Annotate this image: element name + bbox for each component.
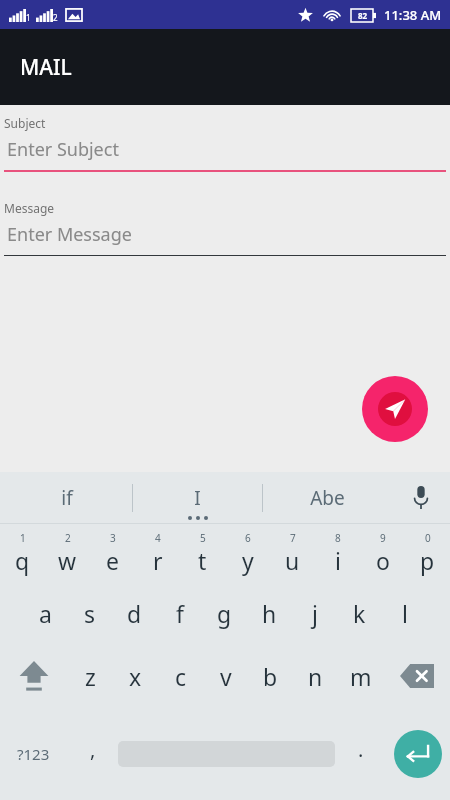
button[interactable]: , xyxy=(67,708,118,800)
button[interactable]: j xyxy=(292,582,337,644)
staticText: Enter Message xyxy=(7,222,132,247)
staticText: d xyxy=(127,598,142,629)
staticText: 0 xyxy=(425,531,431,545)
button[interactable]: 5 xyxy=(180,524,225,582)
staticText: g xyxy=(217,598,232,629)
staticText: 6 xyxy=(245,531,251,545)
staticText: s xyxy=(84,598,96,629)
staticText: c xyxy=(175,661,187,692)
button[interactable]: 2 xyxy=(45,524,90,582)
button[interactable]: n xyxy=(293,644,338,708)
button[interactable]: Shift xyxy=(0,644,67,708)
staticText: m xyxy=(350,661,372,692)
button[interactable]: 4 xyxy=(135,524,180,582)
staticText: , xyxy=(90,736,96,763)
staticText: v xyxy=(220,661,232,692)
button[interactable]: . xyxy=(335,708,386,800)
staticText: y xyxy=(242,545,254,576)
staticText: o xyxy=(376,545,390,576)
staticText: . xyxy=(358,736,364,763)
staticText: 4 xyxy=(155,531,161,545)
button[interactable]: f xyxy=(157,582,202,644)
button[interactable]: Message xyxy=(0,200,450,256)
button[interactable]: b xyxy=(248,644,293,708)
staticText: I xyxy=(194,485,201,511)
button[interactable]: c xyxy=(158,644,203,708)
staticText: Subject xyxy=(4,115,46,131)
staticText: p xyxy=(420,545,435,576)
button[interactable]: 0 xyxy=(405,524,450,582)
button[interactable]: 8 xyxy=(315,524,360,582)
button[interactable]: v xyxy=(203,644,248,708)
staticText: n xyxy=(308,661,323,692)
button[interactable]: Abe xyxy=(263,472,392,523)
staticText: 7 xyxy=(290,531,296,545)
staticText: l xyxy=(402,598,408,629)
staticText: w xyxy=(58,545,77,576)
button[interactable]: 3 xyxy=(90,524,135,582)
staticText: h xyxy=(262,598,277,629)
staticText: 9 xyxy=(380,531,386,545)
staticText: 5 xyxy=(200,531,206,545)
button[interactable]: 1 xyxy=(0,524,45,582)
staticText: 3 xyxy=(110,531,116,545)
staticText: b xyxy=(263,661,278,692)
button[interactable]: g xyxy=(202,582,247,644)
staticText: Message xyxy=(4,200,55,216)
button[interactable]: a xyxy=(23,582,67,644)
button[interactable]: 9 xyxy=(360,524,405,582)
button[interactable]: z xyxy=(67,644,113,708)
button[interactable]: x xyxy=(113,644,158,708)
staticText: a xyxy=(39,598,52,629)
staticText: 1 xyxy=(26,12,31,23)
button[interactable]: ?123 xyxy=(0,708,67,800)
staticText: q xyxy=(15,545,30,576)
button[interactable]: I xyxy=(133,472,262,523)
button[interactable]: Space xyxy=(118,708,335,800)
button[interactable]: Enter xyxy=(386,708,450,800)
staticText: i xyxy=(335,545,341,576)
button[interactable]: 6 xyxy=(225,524,270,582)
staticText: z xyxy=(85,661,96,692)
staticText: Abe xyxy=(310,485,345,511)
button[interactable]: l xyxy=(382,582,427,644)
button[interactable]: s xyxy=(67,582,112,644)
staticText: j xyxy=(312,598,318,629)
button[interactable]: d xyxy=(112,582,157,644)
button[interactable]: Send xyxy=(362,376,428,442)
staticText: x xyxy=(129,661,142,692)
staticText: 8 xyxy=(335,531,341,545)
button[interactable]: if xyxy=(2,472,132,523)
staticText: 2 xyxy=(65,531,71,545)
staticText: if xyxy=(61,485,73,511)
button[interactable]: h xyxy=(247,582,292,644)
button[interactable]: 7 xyxy=(270,524,315,582)
staticText: Enter Subject xyxy=(7,137,119,162)
staticText: u xyxy=(285,545,300,576)
staticText: 2 xyxy=(53,12,58,23)
button[interactable]: Voice input xyxy=(392,472,450,523)
button[interactable]: k xyxy=(337,582,382,644)
button[interactable]: Backspace xyxy=(383,644,450,708)
staticText: 1 xyxy=(20,531,26,545)
staticText: 82 xyxy=(358,10,368,21)
staticText: r xyxy=(153,545,163,576)
staticText: t xyxy=(198,545,207,576)
staticText: f xyxy=(176,598,184,629)
staticText: ?123 xyxy=(17,744,50,764)
staticText: 11:38 AM xyxy=(384,6,442,24)
staticText: MAIL xyxy=(20,53,72,82)
staticText: k xyxy=(353,598,366,629)
button[interactable]: m xyxy=(338,644,383,708)
staticText: e xyxy=(106,545,119,576)
button[interactable]: Subject xyxy=(0,115,450,172)
